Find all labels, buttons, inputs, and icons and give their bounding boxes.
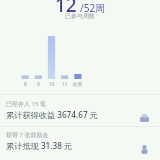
staticText: 获得 7 张鼓励金 [6,131,49,139]
staticText: 累计抵现 31.38 元 [6,140,73,151]
staticText: 本周 [71,81,84,87]
staticText: 已经存入 15 笔 [6,100,46,108]
staticText: 11 [58,81,71,88]
staticText: 12 [55,0,77,18]
staticText: 累计获得收益 3674.67 元 [6,109,98,120]
staticText: /52周 [80,1,106,15]
staticText: 已参与周数 [65,12,95,20]
button[interactable]: Savings detail [0,99,160,125]
staticText: 10 [45,81,58,88]
staticText: 8 [19,81,32,88]
button[interactable]: Bonus detail [0,130,160,156]
staticText: 9 [32,81,45,88]
